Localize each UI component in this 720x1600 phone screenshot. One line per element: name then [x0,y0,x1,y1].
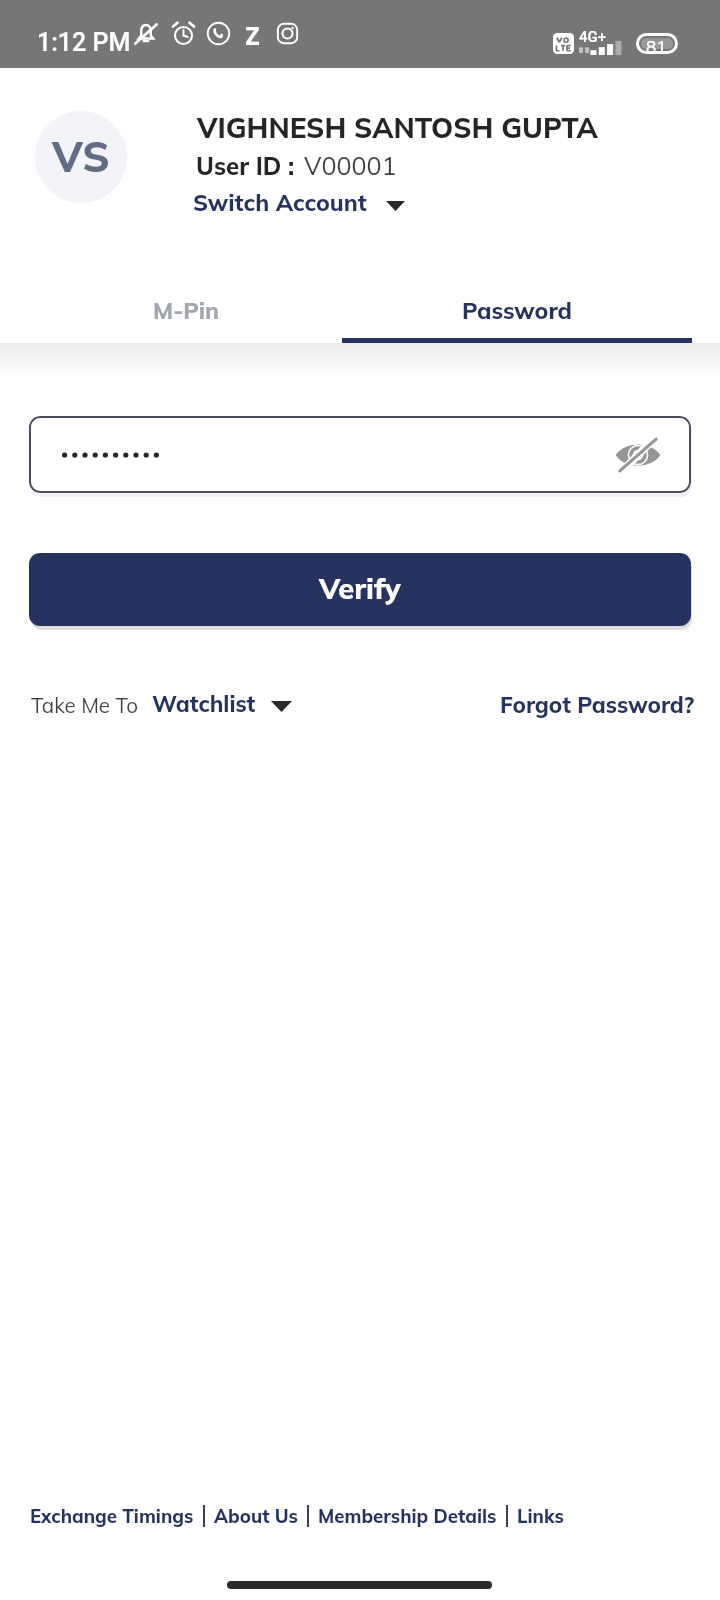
button[interactable]: Password [344,276,691,344]
staticText: 81 [646,36,667,57]
staticText: VS [52,130,110,183]
staticText: 1:12 PM [37,28,131,57]
button[interactable]: Forgot Password? [500,691,695,719]
staticText: Take Me To [31,692,139,718]
button[interactable]: Exchange Timings [30,1504,194,1527]
button[interactable]: Watchlist [152,690,292,718]
button[interactable]: Show password [588,430,688,480]
button[interactable]: Profile [35,111,127,203]
staticText: M-Pin [153,296,220,325]
staticText: Verify [319,570,401,606]
button[interactable]: About Us [214,1504,298,1527]
button[interactable]: Switch Account [193,188,405,217]
button[interactable]: M-Pin [13,276,359,344]
staticText: Watchlist [152,690,256,718]
staticText: User ID : [196,151,295,181]
staticText: VIGHNESH SANTOSH GUPTA [197,110,598,145]
button[interactable]: Links [517,1504,564,1527]
staticText: Switch Account [193,188,367,217]
button[interactable]: Show password [29,416,691,493]
staticText: Z [245,21,260,51]
staticText: 4G+ [579,28,607,46]
button[interactable]: Verify [29,553,691,626]
staticText: V00001 [304,150,397,181]
button[interactable]: Membership Details [318,1504,497,1527]
staticText: Password [462,296,573,325]
